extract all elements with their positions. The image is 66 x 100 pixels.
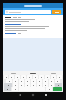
button[interactable]: Key xyxy=(45,75,50,79)
button[interactable]: Key xyxy=(4,75,8,79)
button[interactable] xyxy=(43,71,63,75)
button[interactable]: Key xyxy=(31,79,36,83)
button[interactable]: Key xyxy=(33,75,38,79)
button[interactable]: Key xyxy=(12,87,18,91)
button[interactable] xyxy=(5,17,61,18)
button[interactable]: Key xyxy=(13,79,18,83)
button[interactable]: Backspace xyxy=(55,83,62,87)
button[interactable]: Key xyxy=(13,83,18,87)
button[interactable] xyxy=(3,71,23,75)
button[interactable]: Key xyxy=(43,79,48,83)
button[interactable] xyxy=(5,10,51,14)
button[interactable]: Key xyxy=(49,83,54,87)
button[interactable]: Shift xyxy=(4,83,12,87)
button[interactable]: Key xyxy=(25,79,30,83)
button[interactable]: Back xyxy=(16,92,24,97)
button[interactable]: Key xyxy=(25,83,30,87)
button[interactable]: Key xyxy=(37,79,42,83)
button[interactable] xyxy=(5,33,61,34)
button[interactable]: Key xyxy=(9,75,14,79)
button[interactable]: Home xyxy=(29,92,37,97)
button[interactable]: Key xyxy=(39,75,44,79)
button[interactable]: Key xyxy=(57,75,62,79)
button[interactable]: Key xyxy=(49,79,54,83)
button[interactable]: Key xyxy=(21,75,26,79)
button[interactable]: Key xyxy=(6,79,12,83)
button[interactable] xyxy=(5,24,61,31)
button[interactable]: Symbols xyxy=(4,87,11,91)
button[interactable]: Key xyxy=(27,75,32,79)
button[interactable]: Key xyxy=(19,83,24,87)
button[interactable]: Key xyxy=(51,75,56,79)
button[interactable]: Search xyxy=(52,10,61,14)
button[interactable]: Key xyxy=(55,79,60,83)
button[interactable]: Key xyxy=(46,87,52,91)
button[interactable]: Key xyxy=(37,83,42,87)
button[interactable]: Key xyxy=(19,79,24,83)
button[interactable] xyxy=(23,71,43,75)
button[interactable]: Key xyxy=(31,83,36,87)
button[interactable]: Enter xyxy=(53,87,62,91)
button[interactable]: Recent apps xyxy=(42,92,50,97)
button[interactable]: Key xyxy=(43,83,48,87)
button[interactable]: Key xyxy=(15,75,20,79)
